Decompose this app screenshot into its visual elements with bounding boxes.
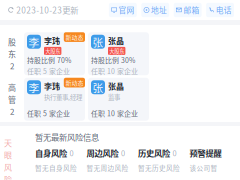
button[interactable]: 张: [88, 78, 149, 121]
staticText: 李玮: [44, 80, 60, 92]
staticText: 张晶: [108, 35, 124, 46]
button[interactable]: 张: [88, 32, 149, 75]
staticText: 地址: [151, 4, 167, 16]
staticText: 张晶: [108, 80, 124, 92]
button[interactable]: 历史风险: [138, 147, 189, 173]
staticText: 李: [28, 34, 39, 49]
staticText: 风: [4, 161, 12, 173]
button[interactable]: 预警提醒: [189, 147, 240, 173]
staticText: 电话: [216, 4, 232, 16]
staticText: 执行董事,经理: [44, 92, 82, 102]
button[interactable]: 自身风险: [35, 147, 86, 173]
staticText: 任职 5 家企业: [27, 108, 70, 118]
staticText: 监事: [108, 92, 120, 102]
staticText: 2: [10, 60, 14, 72]
button[interactable]: 周边风险: [86, 147, 138, 173]
button[interactable]: 官网: [109, 3, 137, 17]
staticText: 官网: [119, 4, 135, 16]
staticText: 0: [69, 147, 73, 158]
staticText: 任职 10 家企业: [91, 66, 138, 76]
staticText: 管: [8, 93, 16, 105]
staticText: 高: [8, 81, 16, 93]
staticText: 张: [92, 79, 103, 95]
staticText: 李玮: [44, 35, 60, 46]
staticText: 历史风险: [138, 147, 170, 159]
staticText: 自身风险: [35, 147, 67, 159]
staticText: 大股东: [109, 47, 124, 55]
staticText: 邮箱: [183, 4, 199, 16]
button[interactable]: 邮箱: [174, 3, 202, 17]
staticText: 该公司暂: [189, 163, 217, 173]
staticText: 新动态: [65, 78, 83, 87]
button[interactable]: 地址: [141, 3, 169, 17]
staticText: 眼: [4, 149, 12, 161]
staticText: 2023-10-23更新: [16, 4, 78, 16]
staticText: 险: [4, 173, 12, 180]
staticText: 新动态: [65, 33, 83, 41]
staticText: 天: [4, 137, 12, 149]
staticText: 周边风险: [86, 147, 118, 159]
staticText: 张: [92, 34, 103, 49]
staticText: 暂无历史风险: [138, 163, 180, 173]
staticText: 暂无自身风险: [35, 163, 77, 173]
staticText: 预警提醒: [189, 147, 221, 159]
staticText: 李: [28, 79, 39, 95]
button[interactable]: 李: [24, 32, 85, 75]
staticText: 持股比例 70%: [27, 55, 71, 65]
button[interactable]: 李: [24, 78, 85, 121]
staticText: 任职 10 家企业: [91, 108, 138, 118]
staticText: 0: [121, 147, 125, 158]
button[interactable]: 电话: [206, 3, 234, 17]
staticText: 股: [8, 36, 16, 47]
staticText: 暂无周边风险: [86, 163, 128, 173]
staticText: 0: [172, 147, 176, 158]
staticText: 2: [10, 105, 14, 117]
staticText: 持股比例 30%: [91, 55, 135, 65]
staticText: 暂无最新风险信息: [35, 131, 99, 143]
staticText: 东: [8, 48, 16, 60]
staticText: 任职 5 家企业: [27, 66, 70, 76]
staticText: 大股东: [45, 47, 60, 55]
